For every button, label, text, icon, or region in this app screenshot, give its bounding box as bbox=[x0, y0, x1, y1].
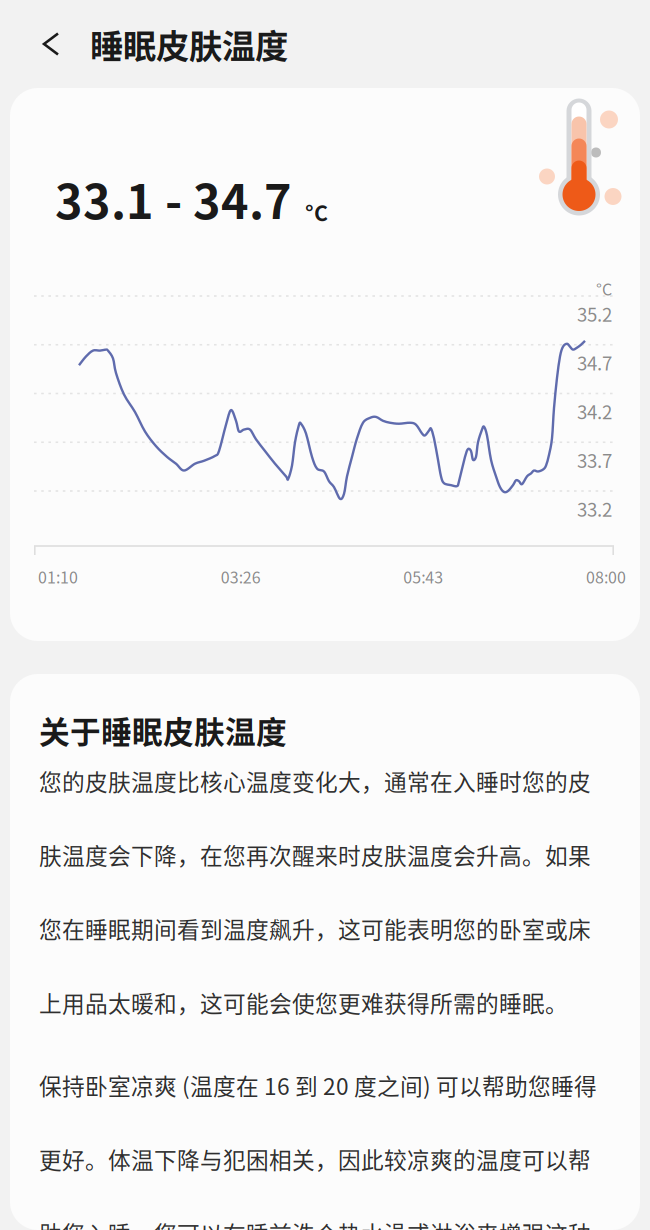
staticText: 您的皮肤温度比核心温度变化大，通常在入睡时您的皮肤温度会下降，在您再次醒来时皮肤… bbox=[39, 764, 591, 1019]
staticText: °C bbox=[596, 277, 612, 300]
staticText: 睡眠皮肤温度 bbox=[90, 20, 288, 68]
staticText: 08:00 bbox=[586, 565, 626, 588]
staticText: °C bbox=[305, 197, 328, 227]
staticText: 34.2 bbox=[577, 397, 612, 424]
staticText: 34.7 bbox=[577, 349, 612, 376]
staticText: 保持卧室凉爽 (温度在 16 到 20 度之间) 可以帮助您睡得更好。体温下降与… bbox=[39, 1069, 597, 1230]
staticText: 35.2 bbox=[577, 300, 612, 327]
staticText: 03:26 bbox=[221, 565, 261, 588]
staticText: 33.2 bbox=[577, 495, 612, 522]
staticText: 33.1 - 34.7 bbox=[55, 165, 292, 232]
staticText: 关于睡眠皮肤温度 bbox=[39, 708, 287, 752]
staticText: 05:43 bbox=[403, 565, 443, 588]
staticText: 01:10 bbox=[38, 565, 78, 588]
staticText: 33.7 bbox=[577, 446, 612, 473]
button[interactable]: Back bbox=[22, 12, 80, 76]
